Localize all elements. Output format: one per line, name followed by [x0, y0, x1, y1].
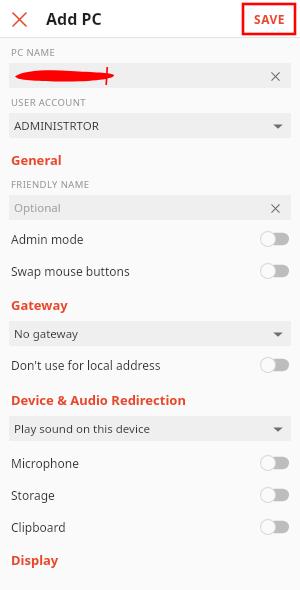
- staticText: Storage: [11, 487, 55, 503]
- button[interactable]: Clear PC name: [266, 67, 284, 85]
- button[interactable]: Swap mouse buttons: [0, 255, 300, 287]
- button[interactable]: Clipboard: [0, 511, 300, 543]
- staticText: No gateway: [14, 326, 78, 342]
- button[interactable]: Play sound on this device: [9, 416, 291, 441]
- staticText: Gateway: [11, 296, 68, 314]
- staticText: Add PC: [46, 8, 102, 30]
- button[interactable]: Clear friendly name: [266, 199, 284, 217]
- staticText: Microphone: [11, 455, 79, 471]
- staticText: USER ACCOUNT: [11, 96, 86, 109]
- staticText: Play sound on this device: [14, 421, 150, 437]
- button[interactable]: SAVE: [246, 8, 292, 30]
- button[interactable]: Storage: [0, 479, 300, 511]
- staticText: Display: [11, 551, 59, 569]
- staticText: Clipboard: [11, 519, 66, 535]
- staticText: Swap mouse buttons: [11, 263, 130, 279]
- button[interactable]: Optional: [9, 195, 291, 220]
- staticText: General: [11, 151, 62, 169]
- staticText: PC NAME: [11, 46, 56, 59]
- button[interactable]: Clear PC name: [9, 63, 291, 88]
- button[interactable]: Close: [6, 6, 32, 32]
- button[interactable]: ADMINISTRTOR: [9, 113, 291, 138]
- staticText: FRIENDLY NAME: [11, 178, 90, 191]
- button[interactable]: Admin mode: [0, 223, 300, 255]
- staticText: SAVE: [254, 11, 285, 27]
- button[interactable]: Microphone: [0, 447, 300, 479]
- staticText: Don't use for local address: [11, 357, 161, 373]
- staticText: Device & Audio Redirection: [11, 391, 186, 409]
- button[interactable]: No gateway: [9, 321, 291, 346]
- staticText: Admin mode: [11, 231, 84, 247]
- staticText: Optional: [14, 200, 61, 216]
- staticText: ADMINISTRTOR: [14, 118, 99, 134]
- button[interactable]: Don't use for local address: [0, 349, 300, 381]
